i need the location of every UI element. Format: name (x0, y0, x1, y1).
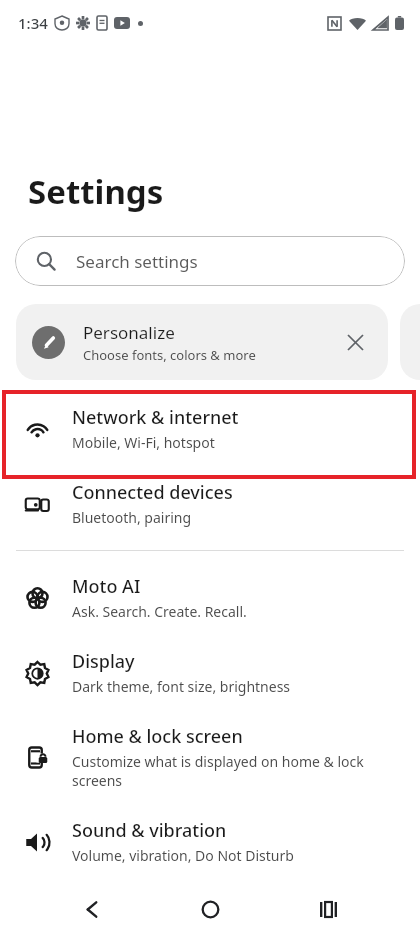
button[interactable]: Back (70, 887, 114, 931)
button[interactable]: Home (188, 887, 232, 931)
button[interactable]: Dismiss (338, 325, 372, 359)
button[interactable]: Search settings (15, 236, 405, 286)
staticText: Mobile, Wi-Fi, hotspot (72, 433, 215, 452)
staticText: Choose fonts, colors & more (83, 346, 256, 364)
button[interactable]: Home & lock screen (0, 710, 420, 804)
staticText: Personalize (83, 321, 175, 344)
button[interactable]: Display (0, 635, 420, 710)
button[interactable]: Moto AI (0, 560, 420, 635)
button[interactable]: Recent apps (306, 887, 350, 931)
staticText: Volume, vibration, Do Not Disturb (72, 846, 294, 865)
button[interactable]: Sound & vibration (0, 804, 420, 879)
staticText: Ask. Search. Create. Recall. (72, 602, 247, 621)
staticText: Customize what is displayed on home & lo… (72, 752, 396, 790)
staticText: Connected devices (72, 480, 233, 505)
staticText: Sound & vibration (72, 818, 227, 843)
button[interactable]: Connected devices (0, 466, 420, 541)
staticText: Bluetooth, pairing (72, 508, 192, 527)
staticText: Home & lock screen (72, 724, 243, 749)
staticText: Network & internet (72, 405, 239, 430)
staticText: Settings (28, 169, 164, 214)
button[interactable]: Network & internet (0, 391, 420, 466)
staticText: Moto AI (72, 574, 141, 599)
staticText: Dark theme, font size, brightness (72, 677, 291, 696)
button[interactable]: Personalize (16, 304, 388, 380)
staticText: Display (72, 649, 135, 674)
staticText: 1:34 (18, 13, 48, 33)
staticText: Search settings (76, 250, 198, 273)
